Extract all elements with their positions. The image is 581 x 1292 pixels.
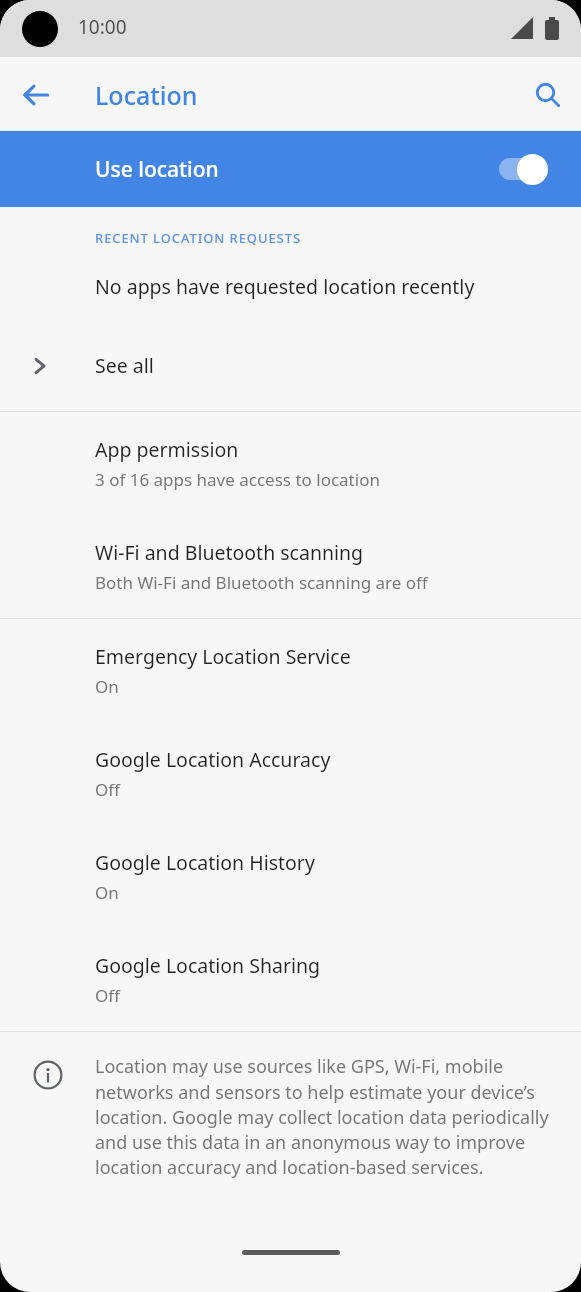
staticText: RECENT LOCATION REQUESTS [95,229,301,247]
staticText: Off [95,778,120,801]
staticText: Location [95,78,198,112]
button[interactable]: See all [0,343,581,391]
button[interactable]: Back [10,69,62,121]
staticText: Wi-Fi and Bluetooth scanning [95,539,364,566]
staticText: Emergency Location Service [95,643,351,670]
button[interactable]: App permission [0,412,581,515]
staticText: Use location [95,155,219,184]
staticText: No apps have requested location recently [95,273,475,300]
staticText: Location may use sources like GPS, Wi-Fi… [95,1054,553,1179]
staticText: 3 of 16 apps have access to location [95,468,380,491]
staticText: App permission [95,436,239,463]
staticText: See all [95,352,154,379]
staticText: Off [95,984,120,1007]
staticText: Both Wi-Fi and Bluetooth scanning are of… [95,571,428,594]
staticText: On [95,881,119,904]
button[interactable]: Use location [0,131,581,207]
staticText: Google Location Sharing [95,952,321,979]
button[interactable]: Google Location Sharing [0,928,581,1031]
staticText: Google Location History [95,849,315,876]
button[interactable]: Search [522,69,572,119]
button[interactable]: Emergency Location Service [0,619,581,722]
button[interactable]: Google Location Accuracy [0,722,581,825]
staticText: 10:00 [78,14,127,40]
staticText: On [95,675,119,698]
button[interactable]: Google Location History [0,825,581,928]
button[interactable]: Wi-Fi and Bluetooth scanning [0,515,581,618]
staticText: Google Location Accuracy [95,746,331,773]
